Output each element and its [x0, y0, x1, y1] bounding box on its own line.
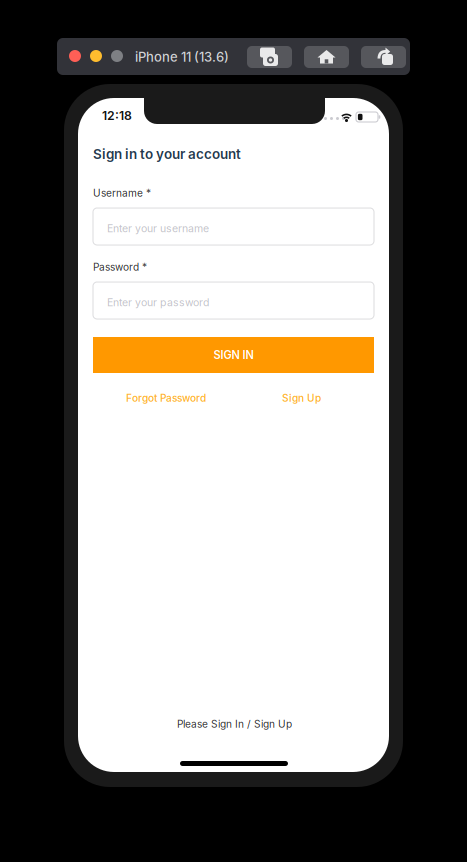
staticText: Sign in to your account: [93, 146, 241, 162]
button[interactable]: Forgot Password: [126, 392, 206, 404]
staticText: SIGN IN: [213, 348, 253, 362]
button[interactable]: Rotate: [361, 46, 406, 68]
staticText: Password *: [93, 261, 147, 273]
staticText: Enter your username: [107, 222, 209, 235]
staticText: Forgot Password: [126, 392, 206, 404]
button[interactable]: SIGN IN: [93, 337, 374, 373]
staticText: Sign Up: [282, 392, 321, 404]
staticText: Enter your password: [107, 296, 209, 309]
staticText: 12:18: [102, 108, 132, 123]
button[interactable]: Sign Up: [282, 392, 321, 404]
staticText: iPhone 11 (13.6): [135, 49, 229, 65]
button[interactable]: Screenshot: [247, 46, 292, 68]
button[interactable]: Home: [304, 46, 349, 68]
staticText: Please Sign In / Sign Up: [177, 718, 292, 730]
staticText: Username *: [93, 187, 151, 199]
